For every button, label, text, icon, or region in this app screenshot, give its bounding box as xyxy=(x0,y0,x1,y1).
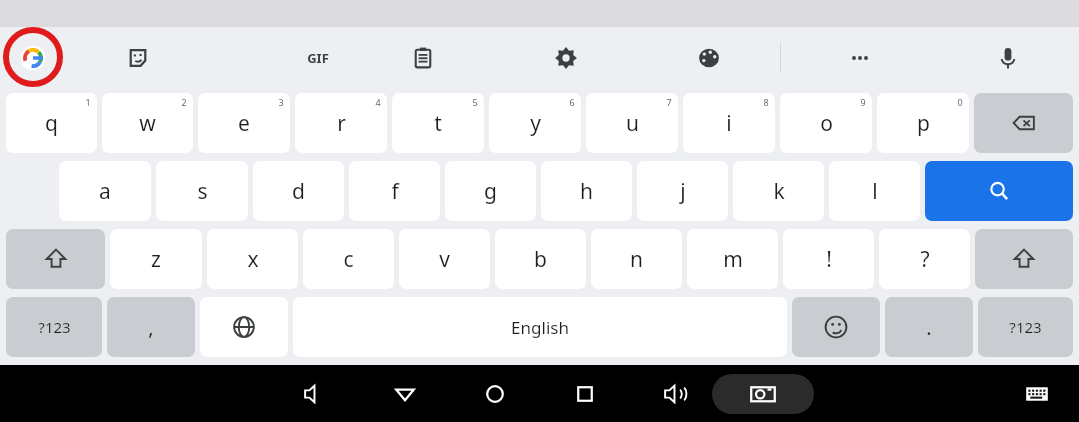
staticText: y xyxy=(530,109,541,138)
button[interactable]: p xyxy=(877,93,969,153)
button[interactable]: Change language xyxy=(200,297,288,357)
button[interactable]: f xyxy=(349,161,440,221)
button[interactable]: e xyxy=(198,93,290,153)
button[interactable]: q xyxy=(6,93,97,153)
button[interactable]: Backspace xyxy=(974,93,1073,153)
button[interactable]: z xyxy=(110,229,202,289)
button[interactable]: i xyxy=(683,93,775,153)
button[interactable]: g xyxy=(445,161,536,221)
button[interactable]: Settings xyxy=(494,27,637,89)
button[interactable]: Back xyxy=(360,365,450,422)
button[interactable]: n xyxy=(591,229,682,289)
staticText: d xyxy=(292,177,305,206)
staticText: 2 xyxy=(181,96,187,108)
staticText: h xyxy=(580,177,593,206)
staticText: o xyxy=(820,109,833,138)
staticText: n xyxy=(630,245,643,274)
staticText: GIF xyxy=(307,49,329,67)
button[interactable]: ? xyxy=(879,229,970,289)
button[interactable]: u xyxy=(586,93,678,153)
staticText: ! xyxy=(826,245,832,274)
staticText: g xyxy=(484,177,497,206)
staticText: 4 xyxy=(375,96,381,108)
button[interactable]: t xyxy=(392,93,484,153)
button[interactable]: Volume down xyxy=(270,365,360,422)
staticText: k xyxy=(773,177,785,206)
staticText: w xyxy=(139,109,156,138)
staticText: b xyxy=(534,245,547,274)
button[interactable]: Themes xyxy=(637,27,780,89)
button[interactable]: ?123 xyxy=(978,297,1073,357)
staticText: English xyxy=(511,316,569,339)
staticText: c xyxy=(343,245,354,274)
button[interactable]: o xyxy=(780,93,872,153)
staticText: i xyxy=(726,109,732,138)
staticText: t xyxy=(434,109,442,138)
button[interactable]: v xyxy=(399,229,490,289)
button[interactable]: English xyxy=(293,297,787,357)
button[interactable]: Volume up xyxy=(630,365,720,422)
staticText: x xyxy=(247,245,259,274)
button[interactable]: l xyxy=(829,161,920,221)
staticText: l xyxy=(872,177,878,206)
staticText: ? xyxy=(920,245,930,274)
button[interactable]: h xyxy=(541,161,632,221)
button[interactable]: b xyxy=(495,229,586,289)
button[interactable]: Emoji xyxy=(792,297,880,357)
button[interactable]: y xyxy=(489,93,581,153)
staticText: j xyxy=(680,177,686,206)
staticText: s xyxy=(197,177,208,206)
staticText: r xyxy=(337,109,346,138)
staticText: 0 xyxy=(957,96,963,108)
button[interactable]: Shift xyxy=(6,229,105,289)
button[interactable]: r xyxy=(295,93,387,153)
button[interactable]: d xyxy=(253,161,344,221)
staticText: ?123 xyxy=(1009,317,1042,337)
staticText: p xyxy=(917,109,930,138)
button[interactable]: . xyxy=(885,297,973,357)
button[interactable]: k xyxy=(733,161,824,221)
staticText: 5 xyxy=(472,96,478,108)
staticText: 7 xyxy=(666,96,672,108)
staticText: z xyxy=(151,245,161,274)
button[interactable]: a xyxy=(59,161,151,221)
button[interactable]: w xyxy=(102,93,193,153)
button[interactable]: s xyxy=(156,161,248,221)
button[interactable]: Recents xyxy=(540,365,630,422)
staticText: 6 xyxy=(569,96,575,108)
staticText: 3 xyxy=(278,96,284,108)
staticText: e xyxy=(238,109,250,138)
button[interactable]: Search xyxy=(925,161,1073,221)
staticText: a xyxy=(99,177,111,206)
button[interactable]: Shift xyxy=(975,229,1073,289)
button[interactable]: Home xyxy=(450,365,540,422)
button[interactable]: Clipboard xyxy=(351,27,494,89)
button[interactable]: Stickers xyxy=(66,27,209,89)
button[interactable]: GIF xyxy=(209,27,351,89)
button[interactable]: x xyxy=(207,229,298,289)
button[interactable]: m xyxy=(687,229,778,289)
staticText: . xyxy=(926,314,932,341)
button[interactable]: ?123 xyxy=(6,297,102,357)
button[interactable]: ! xyxy=(783,229,874,289)
staticText: 9 xyxy=(860,96,866,108)
staticText: 8 xyxy=(763,96,769,108)
staticText: 1 xyxy=(85,96,91,108)
staticText: u xyxy=(626,109,639,138)
staticText: v xyxy=(439,245,450,274)
button[interactable]: j xyxy=(637,161,728,221)
staticText: q xyxy=(45,109,58,138)
button[interactable]: Screenshot xyxy=(712,374,814,414)
staticText: f xyxy=(391,177,399,206)
button[interactable]: More options xyxy=(781,27,938,89)
button[interactable]: Keyboard xyxy=(1017,374,1057,414)
button[interactable]: Google Assistant xyxy=(0,27,66,89)
button[interactable]: , xyxy=(107,297,195,357)
staticText: ?123 xyxy=(38,317,71,337)
staticText: m xyxy=(723,245,743,274)
staticText: , xyxy=(148,314,154,341)
button[interactable]: c xyxy=(303,229,394,289)
button[interactable]: Voice input xyxy=(938,27,1078,89)
